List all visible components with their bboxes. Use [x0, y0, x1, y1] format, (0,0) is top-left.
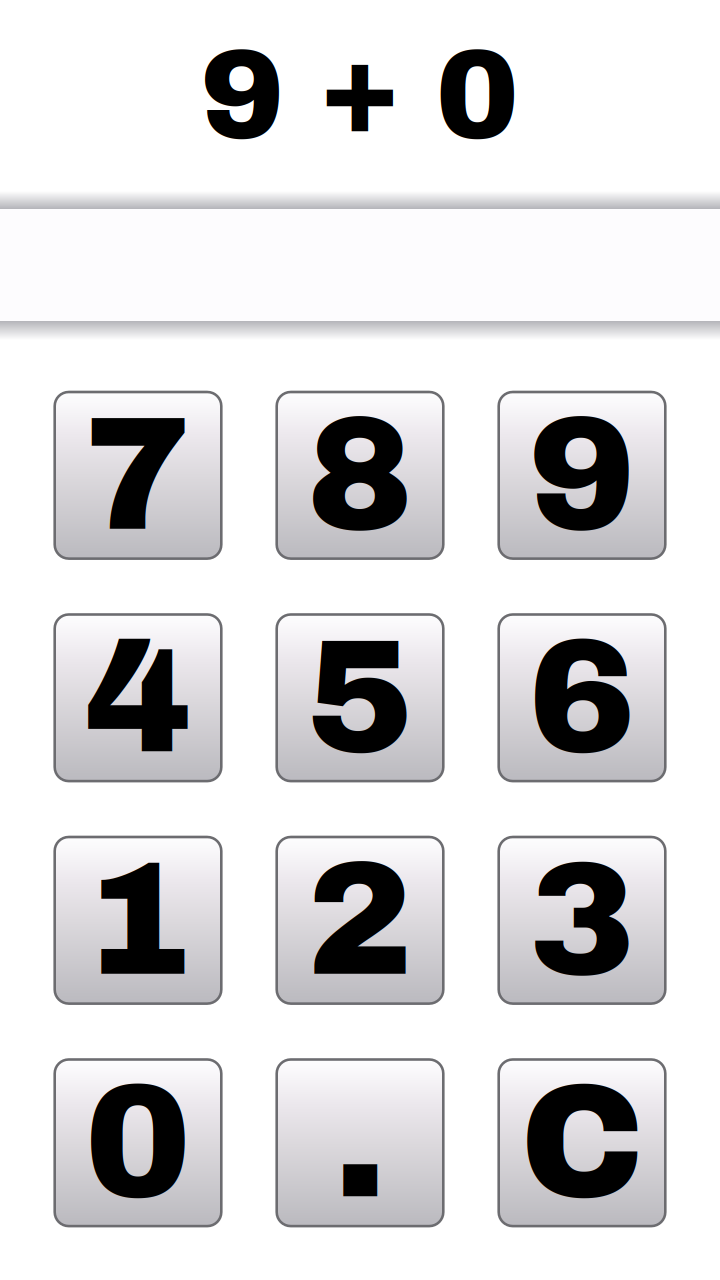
button[interactable]: 9	[499, 392, 665, 559]
staticText: 0	[84, 1056, 191, 1230]
staticText: 9	[528, 388, 635, 562]
staticText: 3	[528, 833, 635, 1007]
staticText: C	[520, 1056, 644, 1230]
staticText: 9	[200, 27, 284, 164]
button[interactable]: 8	[277, 392, 443, 559]
button[interactable]: 0	[55, 1059, 221, 1226]
staticText: 7	[84, 388, 191, 562]
staticText: +	[318, 21, 401, 158]
button[interactable]: 6	[499, 614, 665, 781]
button[interactable]: 5	[277, 614, 443, 781]
button[interactable]: .	[277, 1059, 443, 1226]
staticText: 6	[528, 611, 635, 785]
button[interactable]: 7	[55, 392, 221, 559]
button[interactable]: 4	[55, 614, 221, 781]
staticText: 5	[306, 611, 413, 785]
button[interactable]: 2	[277, 837, 443, 1004]
staticText: 2	[306, 833, 413, 1007]
staticText: .	[333, 1056, 386, 1230]
button[interactable]: 3	[499, 837, 665, 1004]
staticText: 8	[306, 388, 413, 562]
staticText: 1	[84, 833, 191, 1007]
button[interactable]: C	[499, 1059, 665, 1226]
staticText: 4	[84, 611, 191, 785]
staticText: 0	[435, 27, 519, 164]
button[interactable]: 1	[55, 837, 221, 1004]
